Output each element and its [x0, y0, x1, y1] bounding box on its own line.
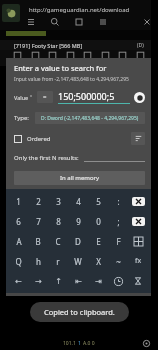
button[interactable]: Save	[30, 50, 41, 61]
button[interactable]: Menu	[98, 17, 108, 27]
staticText: Value	[14, 94, 29, 101]
button[interactable]: backspace	[131, 194, 145, 208]
staticText: Type:	[14, 114, 29, 122]
button[interactable]: In all memory	[14, 171, 145, 185]
staticText: Copied to clipboard.	[44, 307, 115, 317]
staticText: D	[75, 236, 81, 247]
button[interactable]: :	[108, 191, 128, 211]
staticText: r	[56, 256, 60, 267]
button[interactable]: ↑	[48, 271, 68, 291]
button[interactable]: 8	[48, 211, 68, 231]
button[interactable]: grid	[131, 234, 145, 248]
button[interactable]: r	[48, 251, 68, 271]
staticText: C	[55, 236, 61, 247]
button[interactable]: 1	[9, 191, 28, 211]
staticText: 0	[96, 216, 101, 227]
button[interactable]	[84, 152, 145, 162]
button[interactable]: hourglass	[131, 274, 145, 288]
button[interactable]: 4	[68, 191, 88, 211]
button[interactable]: Next	[12, 50, 23, 61]
button[interactable]: ⇥	[88, 271, 108, 291]
staticText: A.0 0	[83, 340, 95, 347]
button[interactable]: 6	[9, 211, 28, 231]
staticText: A	[16, 236, 22, 247]
staticText: ↑	[55, 277, 62, 286]
staticText: 101.1	[63, 340, 76, 347]
button[interactable]: backspace2	[131, 214, 145, 228]
button[interactable]: ;	[108, 211, 128, 231]
staticText: W	[74, 256, 82, 267]
button[interactable]: h	[28, 251, 48, 271]
button[interactable]: 2	[28, 191, 48, 211]
button[interactable]: Save	[74, 17, 84, 27]
button[interactable]: B	[28, 231, 48, 251]
staticText: 8	[56, 216, 61, 227]
staticText: (D)	[137, 42, 144, 49]
button[interactable]: history	[111, 274, 125, 288]
button[interactable]: W	[68, 251, 88, 271]
button[interactable]: Menu	[135, 50, 146, 61]
button[interactable]: A	[9, 231, 28, 251]
button[interactable]: ⇤	[68, 271, 88, 291]
staticText: 150;500000;5	[58, 90, 115, 102]
button[interactable]: Bookmarks	[26, 17, 36, 27]
staticText: Input value from -2,147,483,648 to 4,294…	[14, 76, 129, 83]
staticText: http://gameguardian.net/download	[29, 6, 130, 14]
staticText: ←	[15, 277, 22, 286]
staticText: →	[35, 277, 42, 286]
button[interactable]: 9	[68, 211, 88, 231]
staticText: In all memory	[60, 174, 100, 182]
button[interactable]: 0	[88, 211, 108, 231]
button[interactable]: Search	[50, 17, 60, 27]
staticText: ~	[116, 256, 121, 267]
staticText: X	[96, 256, 101, 267]
staticText: 4	[76, 196, 81, 207]
staticText: 3	[56, 196, 61, 207]
button[interactable]: Settings	[143, 340, 150, 347]
staticText: Ordered	[27, 135, 51, 143]
button[interactable]: 7	[28, 211, 48, 231]
button[interactable]: D: Dword (-2,147,483,648 - 4,294,967,295…	[35, 112, 145, 124]
button[interactable]: Dropdown	[134, 92, 145, 103]
button[interactable]: Search	[100, 50, 111, 61]
button[interactable]: Search Edit	[47, 50, 58, 61]
button[interactable]: X	[88, 251, 108, 271]
button[interactable]: Close	[142, 17, 152, 27]
staticText: 2	[36, 196, 41, 207]
staticText: ⇤	[75, 277, 82, 286]
staticText: 7	[36, 216, 41, 227]
staticText: h	[36, 256, 41, 267]
staticText: D: Dword (-2,147,483,648 - 4,294,967,295…	[41, 115, 139, 122]
button[interactable]: E	[88, 231, 108, 251]
button[interactable]: →	[28, 271, 48, 291]
staticText: =	[43, 93, 47, 101]
staticText: Enter a value to search for	[14, 63, 107, 73]
button[interactable]: 5	[88, 191, 108, 211]
button[interactable]: Delete	[65, 50, 76, 61]
button[interactable]: =	[37, 91, 53, 103]
staticText: :	[117, 196, 120, 207]
button[interactable]: Ordered	[14, 135, 51, 143]
staticText: 5	[96, 196, 101, 207]
button[interactable]: ←	[9, 271, 28, 291]
staticText: 1	[78, 340, 81, 347]
button[interactable]: Q	[9, 251, 28, 271]
staticText: 9	[76, 216, 81, 227]
staticText: ;	[117, 216, 120, 227]
staticText: 1	[16, 196, 21, 207]
button[interactable]: F	[108, 231, 128, 251]
staticText: B	[35, 236, 41, 247]
staticText: E	[96, 236, 101, 247]
staticText: [7191] Footy Star [566 MB]	[14, 42, 83, 49]
button[interactable]: C	[48, 231, 68, 251]
button[interactable]: D	[68, 231, 88, 251]
button[interactable]: Refine	[82, 50, 93, 61]
button[interactable]: Sort order	[131, 132, 145, 145]
button[interactable]: fx	[131, 254, 145, 268]
staticText: ⇥	[95, 277, 102, 286]
button[interactable]: 3	[48, 191, 68, 211]
button[interactable]: Play	[117, 50, 128, 61]
button[interactable]: ~	[108, 251, 128, 271]
